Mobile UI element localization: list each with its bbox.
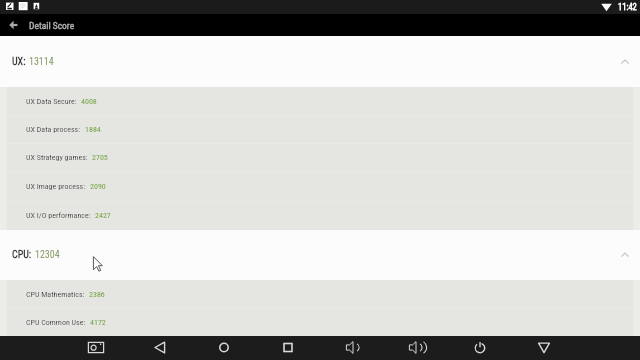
button[interactable]: Back bbox=[0, 14, 26, 36]
button[interactable]: Collapse CPU bbox=[614, 245, 634, 265]
staticText: UX I/O performance: bbox=[26, 211, 91, 220]
button[interactable]: Home bbox=[192, 336, 256, 360]
staticText: 1884 bbox=[85, 125, 101, 134]
staticText: UX Image process: bbox=[26, 182, 86, 191]
button[interactable]: UX Data process: bbox=[0, 115, 640, 143]
button[interactable]: UX Strategy games: bbox=[0, 143, 640, 172]
staticText: CPU: bbox=[12, 249, 32, 261]
staticText: UX Strategy games: bbox=[26, 153, 88, 162]
staticText: 4008 bbox=[81, 97, 97, 106]
button[interactable]: CPU: bbox=[0, 230, 640, 280]
staticText: 13114 bbox=[29, 56, 54, 68]
button[interactable]: UX I/O performance: bbox=[0, 201, 640, 230]
button[interactable]: UX: bbox=[0, 36, 640, 87]
button[interactable]: CPU Mathematics: bbox=[0, 280, 640, 308]
button[interactable]: UX Data Secure: bbox=[0, 87, 640, 115]
staticText: 11:42 bbox=[618, 2, 637, 12]
button[interactable]: Volume down bbox=[320, 336, 384, 360]
button[interactable]: Back bbox=[128, 336, 192, 360]
staticText: 2386 bbox=[89, 290, 105, 299]
staticText: CPU Mathematics: bbox=[26, 290, 85, 299]
staticText: 4172 bbox=[90, 318, 106, 327]
button[interactable]: Volume up bbox=[384, 336, 448, 360]
staticText: 12304 bbox=[35, 249, 60, 261]
staticText: Detail Score bbox=[29, 20, 75, 31]
button[interactable]: Recents bbox=[256, 336, 320, 360]
button[interactable]: CPU Common Use: bbox=[0, 308, 640, 336]
button[interactable]: UX Image process: bbox=[0, 172, 640, 201]
staticText: 2427 bbox=[95, 211, 111, 220]
staticText: CPU Common Use: bbox=[26, 318, 86, 327]
staticText: UX: bbox=[12, 56, 26, 68]
button[interactable]: Screenshot bbox=[64, 336, 128, 360]
button[interactable]: Hide navigation bar bbox=[512, 336, 576, 360]
staticText: 2090 bbox=[90, 182, 106, 191]
staticText: UX Data Secure: bbox=[26, 97, 77, 106]
button[interactable]: Collapse UX bbox=[614, 52, 634, 72]
button[interactable]: Power bbox=[448, 336, 512, 360]
staticText: UX Data process: bbox=[26, 125, 81, 134]
staticText: 2705 bbox=[92, 153, 108, 162]
